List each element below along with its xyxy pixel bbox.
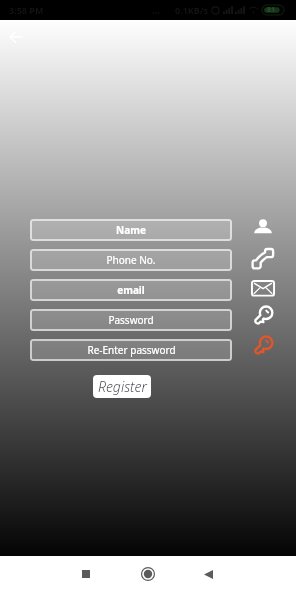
staticText: Name <box>116 223 146 237</box>
button[interactable]: Name <box>30 219 232 241</box>
button[interactable]: Back <box>0 20 31 53</box>
staticText: Phone No. <box>106 253 156 267</box>
button[interactable]: Phone No. <box>30 249 232 271</box>
staticText: Re-Enter password <box>87 343 176 357</box>
button[interactable]: Password <box>30 309 232 331</box>
button[interactable]: Register <box>93 375 151 398</box>
staticText: 0.1KB/s <box>175 4 209 16</box>
button[interactable]: Re-Enter password <box>30 339 232 361</box>
staticText: Password <box>108 313 154 327</box>
staticText: email <box>117 283 145 297</box>
staticText: 81 <box>267 5 276 15</box>
button[interactable]: Back <box>179 556 241 592</box>
button[interactable]: Home <box>117 556 179 592</box>
staticText: 3:58 PM <box>9 4 44 16</box>
button[interactable]: email <box>30 279 232 301</box>
staticText: Register <box>98 377 147 396</box>
button[interactable]: Recents <box>55 556 117 592</box>
